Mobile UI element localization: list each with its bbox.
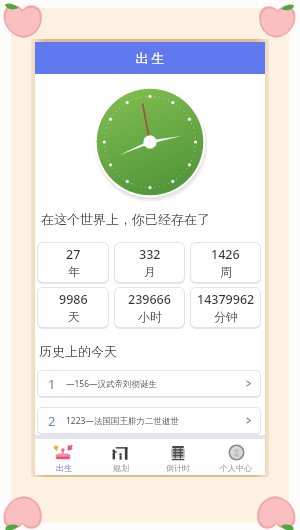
staticText: 周 (220, 264, 232, 279)
staticText: 1426 (211, 246, 240, 263)
staticText: 分钟 (214, 309, 238, 324)
staticText: 历史上的今天 (39, 343, 117, 359)
button[interactable]: 规划 (92, 439, 149, 475)
staticText: 在这个世界上，你已经存在了 (41, 211, 210, 227)
staticText: 1 (48, 375, 56, 393)
button[interactable]: 出生 (35, 439, 92, 475)
staticText: 239666 (128, 291, 171, 308)
button[interactable]: 332 (115, 243, 184, 282)
staticText: 2 (48, 412, 56, 430)
staticText: 年 (68, 264, 80, 279)
button[interactable]: 出生 (35, 42, 265, 74)
staticText: 出生 (134, 50, 166, 66)
button[interactable]: 1 (38, 371, 260, 396)
other: 个人中心 (227, 443, 246, 462)
staticText: 9986 (59, 291, 88, 308)
button[interactable]: 27 (38, 243, 108, 282)
button[interactable]: 倒计时 (149, 439, 207, 475)
staticText: 14379962 (197, 291, 255, 308)
button[interactable]: 2 (38, 408, 260, 433)
staticText: 出生 (56, 463, 72, 473)
staticText: 倒计时 (166, 463, 190, 473)
staticText: 1223—法国国王腓力二世逝世 (66, 415, 244, 427)
button[interactable]: 1426 (191, 243, 260, 282)
button[interactable]: 个人中心 (207, 439, 265, 475)
button[interactable]: 239666 (115, 288, 184, 327)
other: 出生 (53, 442, 74, 462)
button[interactable]: 14379962 (191, 288, 260, 327)
staticText: 个人中心 (220, 463, 252, 473)
other: 规划 (111, 443, 131, 462)
staticText: 小时 (138, 309, 162, 324)
staticText: 332 (139, 246, 161, 263)
other: 倒计时 (168, 443, 188, 462)
button[interactable]: 9986 (38, 288, 108, 327)
staticText: 规划 (113, 463, 129, 473)
staticText: 27 (66, 246, 81, 263)
staticText: —156—汉武帝刘彻诞生 (66, 378, 244, 390)
staticText: 月 (144, 264, 156, 279)
staticText: 天 (68, 309, 80, 324)
